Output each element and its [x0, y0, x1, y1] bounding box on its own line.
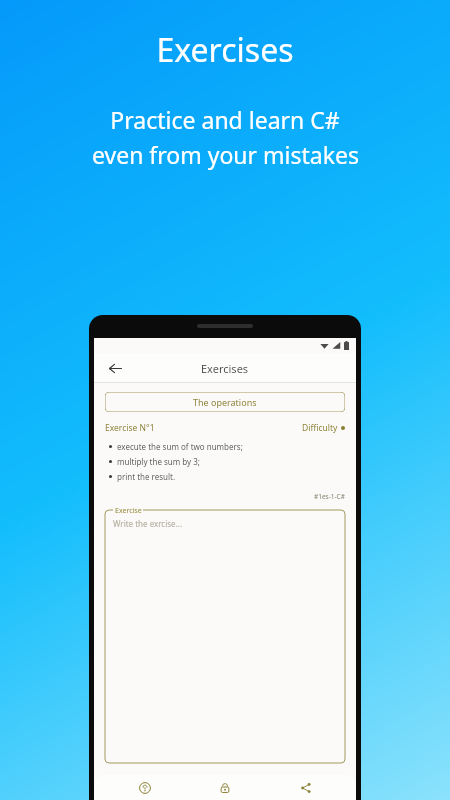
- staticText: print the result.: [117, 471, 176, 482]
- button[interactable]: The operations: [105, 392, 345, 412]
- button[interactable]: Back: [102, 355, 128, 381]
- staticText: Practice and learn C#: [110, 104, 340, 135]
- staticText: Exercise N°1: [105, 422, 155, 434]
- staticText: even from your mistakes: [92, 139, 359, 170]
- staticText: Exercises: [201, 361, 249, 376]
- staticText: Exercises: [156, 28, 294, 72]
- button[interactable]: Unlock: [195, 780, 255, 800]
- button[interactable]: Help: [115, 780, 175, 800]
- button[interactable]: Share: [276, 780, 336, 800]
- button[interactable]: Exercise: [105, 506, 345, 763]
- staticText: execute the sum of two numbers;: [117, 441, 243, 452]
- staticText: The operations: [193, 396, 257, 408]
- staticText: #1es-1-C#: [314, 492, 345, 501]
- staticText: Difficulty: [302, 422, 338, 434]
- staticText: Write the exrcise...: [113, 518, 183, 529]
- staticText: multiply the sum by 3;: [117, 456, 200, 467]
- staticText: Exercise: [115, 506, 142, 516]
